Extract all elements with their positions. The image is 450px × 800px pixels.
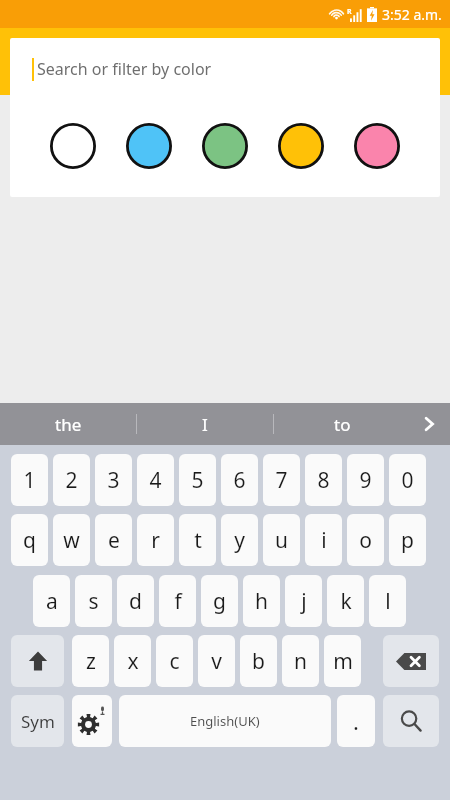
button[interactable]: the [0,403,136,445]
staticText: 7 [275,466,288,495]
button[interactable]: Blue [125,122,173,170]
staticText: i [321,526,327,555]
button[interactable]: b [240,635,277,687]
staticText: a [46,587,58,616]
button[interactable]: Settings [72,695,112,747]
staticText: d [129,587,142,616]
button[interactable]: 0 [389,454,426,506]
button[interactable]: 3 [95,454,132,506]
button[interactable]: 4 [137,454,174,506]
staticText: l [385,587,391,616]
staticText: t [194,526,202,555]
button[interactable]: r [137,514,174,566]
button[interactable]: t [179,514,216,566]
staticText: to [334,413,351,436]
staticText: 8 [317,466,330,495]
staticText: 1 [23,466,36,495]
staticText: p [401,526,414,555]
button[interactable]: h [243,575,280,627]
staticText: 5 [191,466,204,495]
button[interactable]: 5 [179,454,216,506]
button[interactable]: v [198,635,235,687]
staticText: 2 [65,466,78,495]
button[interactable]: 9 [347,454,384,506]
staticText: f [174,587,182,616]
staticText: 3:52 a.m. [382,5,442,24]
staticText: . [353,706,359,736]
button[interactable]: w [53,514,90,566]
button[interactable]: o [347,514,384,566]
button[interactable]: d [117,575,154,627]
button[interactable]: White [49,122,97,170]
button[interactable]: l [369,575,406,627]
staticText: R [347,7,352,17]
button[interactable]: to [274,403,410,445]
button[interactable]: Search or filter by color [10,38,440,100]
staticText: Sym [21,710,55,733]
button[interactable]: s [75,575,112,627]
button[interactable]: I [137,403,273,445]
button[interactable]: Shift [11,635,64,687]
button[interactable]: More suggestions [408,403,450,445]
button[interactable]: c [156,635,193,687]
staticText: Search or filter by color [37,58,212,80]
staticText: z [86,647,96,676]
staticText: 0 [401,466,414,495]
button[interactable]: Pink [353,122,401,170]
button[interactable]: f [159,575,196,627]
button[interactable]: Symbols [11,695,64,747]
button[interactable]: z [72,635,109,687]
staticText: y [234,526,245,555]
button[interactable]: 7 [263,454,300,506]
button[interactable]: p [389,514,426,566]
button[interactable]: . [337,695,375,747]
staticText: m [333,647,353,676]
staticText: h [255,587,268,616]
staticText: g [213,587,226,616]
staticText: English(UK) [190,712,260,730]
staticText: 3 [107,466,120,495]
button[interactable]: m [324,635,361,687]
button[interactable]: English(UK) [119,695,331,747]
staticText: n [294,647,307,676]
staticText: s [88,587,99,616]
button[interactable]: y [221,514,258,566]
button[interactable]: u [263,514,300,566]
button[interactable]: Green [201,122,249,170]
staticText: 4 [149,466,162,495]
staticText: u [275,526,288,555]
staticText: c [169,647,180,676]
staticText: b [252,647,265,676]
button[interactable]: x [114,635,151,687]
button[interactable]: n [282,635,319,687]
staticText: 9 [359,466,372,495]
button[interactable]: e [95,514,132,566]
staticText: r [151,526,160,555]
button[interactable]: 8 [305,454,342,506]
button[interactable]: 6 [221,454,258,506]
button[interactable]: k [327,575,364,627]
button[interactable]: i [305,514,342,566]
button[interactable]: Backspace [383,635,439,687]
staticText: o [359,526,372,555]
staticText: I [202,413,208,436]
button[interactable]: g [201,575,238,627]
staticText: the [55,413,82,436]
button[interactable]: 1 [11,454,48,506]
staticText: q [23,526,36,555]
button[interactable]: 2 [53,454,90,506]
button[interactable]: Search [383,695,439,747]
button[interactable]: j [285,575,322,627]
staticText: v [211,647,222,676]
button[interactable]: a [33,575,70,627]
staticText: x [127,647,139,676]
staticText: k [340,587,352,616]
staticText: e [108,526,120,555]
staticText: w [63,526,80,555]
staticText: 6 [233,466,246,495]
button[interactable]: Amber [277,122,325,170]
staticText: j [301,587,307,616]
button[interactable]: q [11,514,48,566]
